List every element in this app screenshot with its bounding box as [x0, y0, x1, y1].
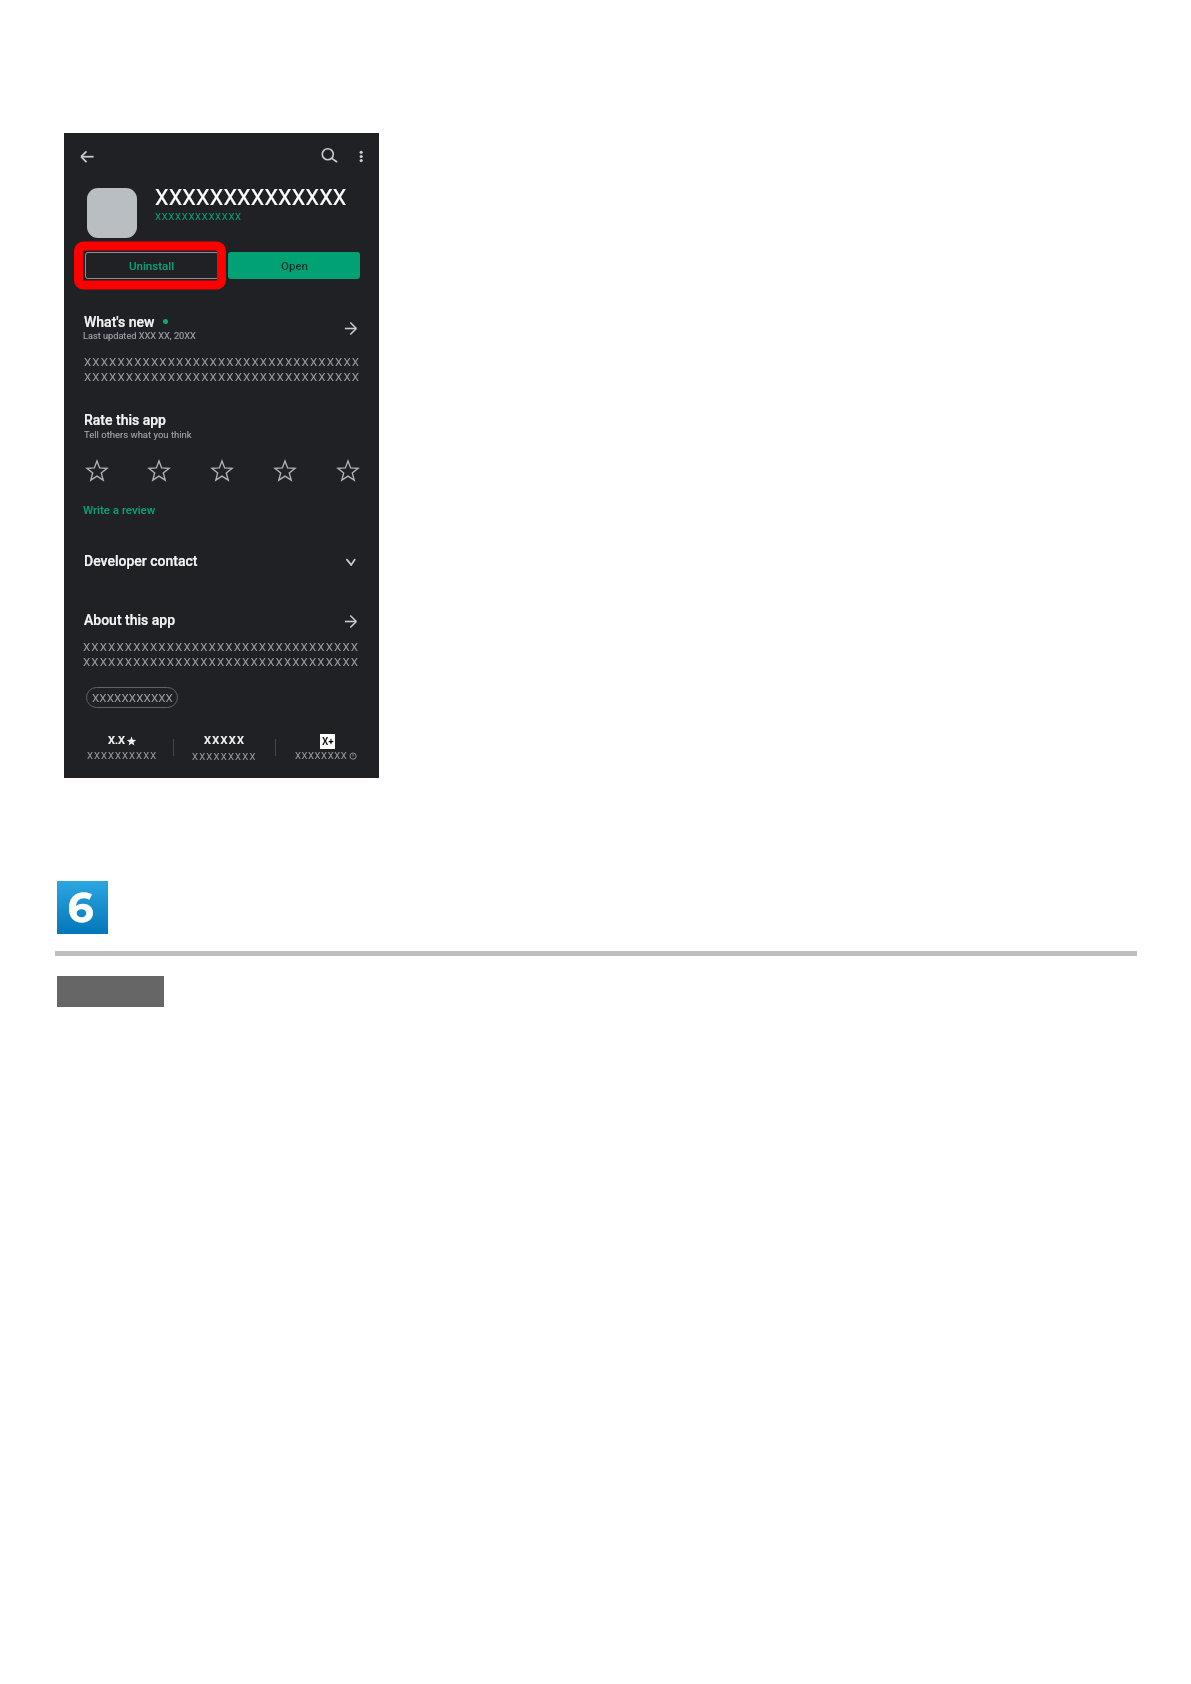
staticText: XXXXXXXXXX — [87, 750, 158, 761]
button[interactable]: Rate 5 star — [333, 456, 363, 486]
staticText: XXXXXXXXXXXXXXXXXXXXXXXXXXXXXXXXX — [84, 355, 361, 368]
button[interactable]: XXXXXXXXXXX — [86, 687, 178, 708]
button[interactable]: Rate 2 star — [144, 456, 174, 486]
staticText: XXXXXXXXXXXXXX — [155, 185, 347, 210]
button[interactable]: Uninstall — [85, 252, 219, 279]
staticText: XXXXXXXX — [295, 750, 348, 761]
button[interactable]: Rate 3 star — [207, 456, 237, 486]
staticText: XXXXXXXXXXXXXXXXXXXXXXXXXXXXXXXXX — [83, 640, 360, 653]
staticText: Rate this app — [84, 412, 166, 428]
staticText: Uninstall — [129, 259, 175, 272]
button[interactable]: About this app — [81, 611, 362, 637]
staticText: Last updated XXX XX, 20XX — [83, 330, 196, 341]
staticText: X+ — [322, 736, 334, 748]
staticText: X.X — [108, 734, 125, 747]
button[interactable]: Developer contact — [81, 553, 362, 579]
staticText: Write a review — [83, 503, 156, 516]
button[interactable]: Write a review — [83, 502, 161, 519]
button[interactable]: Open — [228, 252, 360, 279]
staticText: XXXXXXXXX — [192, 751, 257, 762]
staticText: XXXXXXXXXXXXXXXXXXXXXXXXXXXXXXXXX — [84, 370, 361, 383]
staticText: XXXXX — [204, 734, 246, 747]
button[interactable]: Back — [72, 142, 100, 170]
button[interactable]: Search — [314, 141, 342, 169]
button[interactable]: Rate 1 star — [82, 456, 112, 486]
staticText: Developer contact — [84, 553, 198, 569]
staticText: XXXXXXXXXXX — [92, 691, 173, 704]
button[interactable]: More options — [347, 141, 375, 169]
staticText: XXXXXXXXXXXXXXXXXXXXXXXXXXXXXXXXX — [83, 655, 360, 668]
button[interactable]: Rate 4 star — [270, 456, 300, 486]
staticText: Tell others what you think — [84, 429, 192, 440]
staticText: XXXXXXXXXXXXX — [155, 211, 242, 222]
staticText: 6 — [67, 882, 94, 932]
button[interactable]: What's new — [81, 309, 362, 345]
staticText: What's new — [84, 314, 155, 330]
staticText: About this app — [84, 612, 175, 628]
staticText: Open — [281, 259, 308, 272]
